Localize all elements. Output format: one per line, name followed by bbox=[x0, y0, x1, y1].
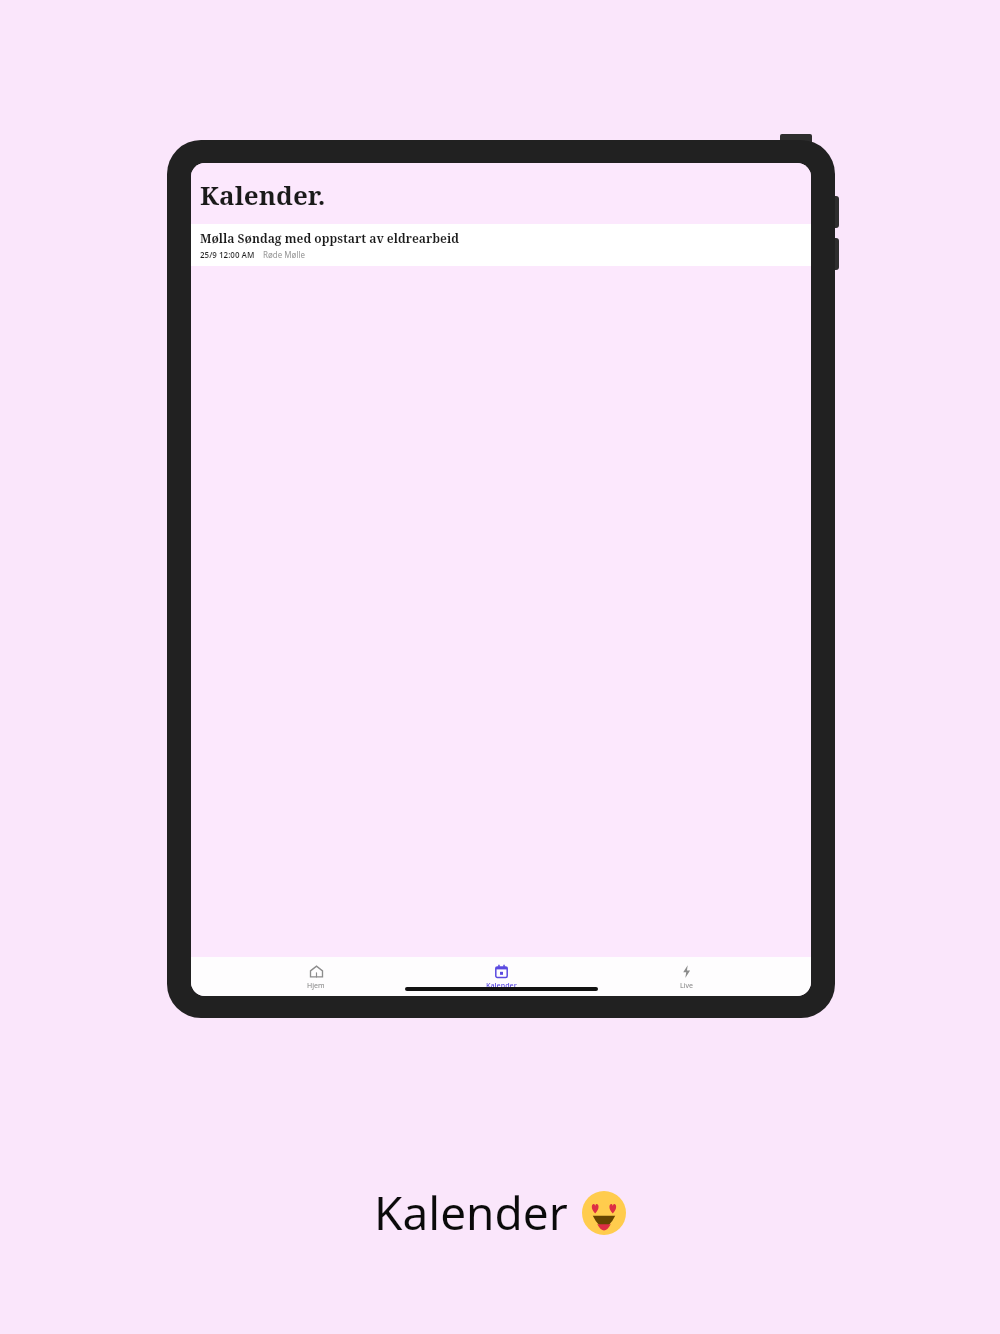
button[interactable]: Hjem bbox=[256, 962, 376, 993]
button[interactable]: Live bbox=[626, 962, 746, 993]
staticText: Live bbox=[680, 981, 693, 991]
staticText: 25/9 12:00 AM bbox=[200, 249, 255, 260]
staticText: Røde Mølle bbox=[263, 249, 306, 260]
staticText: Kalender bbox=[486, 981, 517, 991]
staticText: Hjem bbox=[307, 981, 325, 991]
staticText: Mølla Søndag med oppstart av eldrearbeid bbox=[200, 230, 459, 246]
staticText: Kalender bbox=[374, 1181, 568, 1244]
staticText: Kalender. bbox=[200, 177, 326, 212]
button[interactable]: Mølla Søndag med oppstart av eldrearbeid bbox=[191, 224, 811, 266]
button[interactable]: Kalender bbox=[441, 962, 561, 993]
